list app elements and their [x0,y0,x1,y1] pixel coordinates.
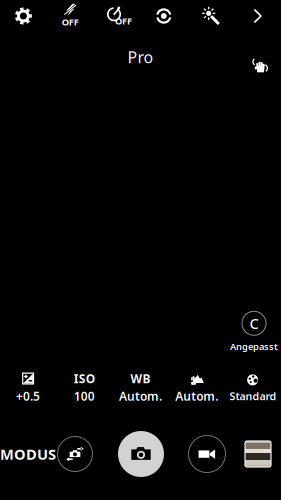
button[interactable]: Flash off [48,1,92,31]
staticText: OFF [115,15,132,27]
button[interactable]: Settings [1,1,45,31]
staticText: Autom. [175,388,218,404]
staticText: Pro [127,46,153,68]
staticText: +0.5 [16,388,40,404]
button[interactable]: Angepasst preset [216,310,281,354]
button[interactable]: White balance [112,372,168,404]
staticText: 100 [74,388,95,404]
button[interactable]: Picture style [225,372,281,404]
button[interactable]: MODUS [0,434,56,474]
button[interactable]: Take photo [118,431,164,477]
staticText: Standard [229,389,276,403]
staticText: C [249,314,258,333]
staticText: Autom. [119,388,162,404]
button[interactable]: Exposure compensation [0,372,56,404]
button[interactable]: More options [235,1,279,31]
staticText: OFF [62,16,79,28]
button[interactable]: Scene detection [169,372,225,404]
staticText: WB [130,371,150,386]
button[interactable]: Record video [188,435,225,472]
button[interactable]: Timer off [95,1,139,31]
button[interactable]: Palm shutter [245,52,275,78]
button[interactable]: Gallery [238,434,278,474]
staticText: MODUS [0,444,56,464]
button[interactable]: Auto enhance [189,1,233,31]
button[interactable]: ISO [56,372,112,404]
button[interactable]: Metering mode [142,1,186,31]
staticText: Angepasst [230,340,278,353]
button[interactable]: Switch camera [57,436,92,471]
staticText: ISO [74,371,95,386]
